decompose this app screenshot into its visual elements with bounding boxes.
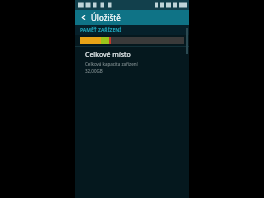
staticText: Celkové místo — [85, 50, 131, 60]
button[interactable]: Back — [75, 10, 189, 25]
staticText: Úložiště — [91, 12, 121, 23]
button[interactable]: Celkové místo — [75, 47, 189, 198]
button[interactable]: Back — [79, 13, 88, 22]
staticText: Celková kapacita zařízení — [85, 61, 138, 67]
staticText: PAMĚŤ ZAŘÍZENÍ — [80, 27, 122, 34]
staticText: 32,00GB — [85, 68, 103, 74]
